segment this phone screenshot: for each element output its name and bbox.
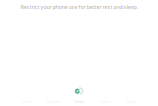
staticText: Sleep	[74, 99, 83, 104]
staticText: Profile	[125, 99, 136, 104]
staticText: Focus	[100, 99, 110, 104]
staticText: Insights	[46, 99, 59, 104]
staticText: Restrict your phone use for better rest …	[20, 3, 137, 10]
staticText: Home	[21, 99, 32, 104]
button[interactable]: Sleep	[66, 88, 92, 104]
